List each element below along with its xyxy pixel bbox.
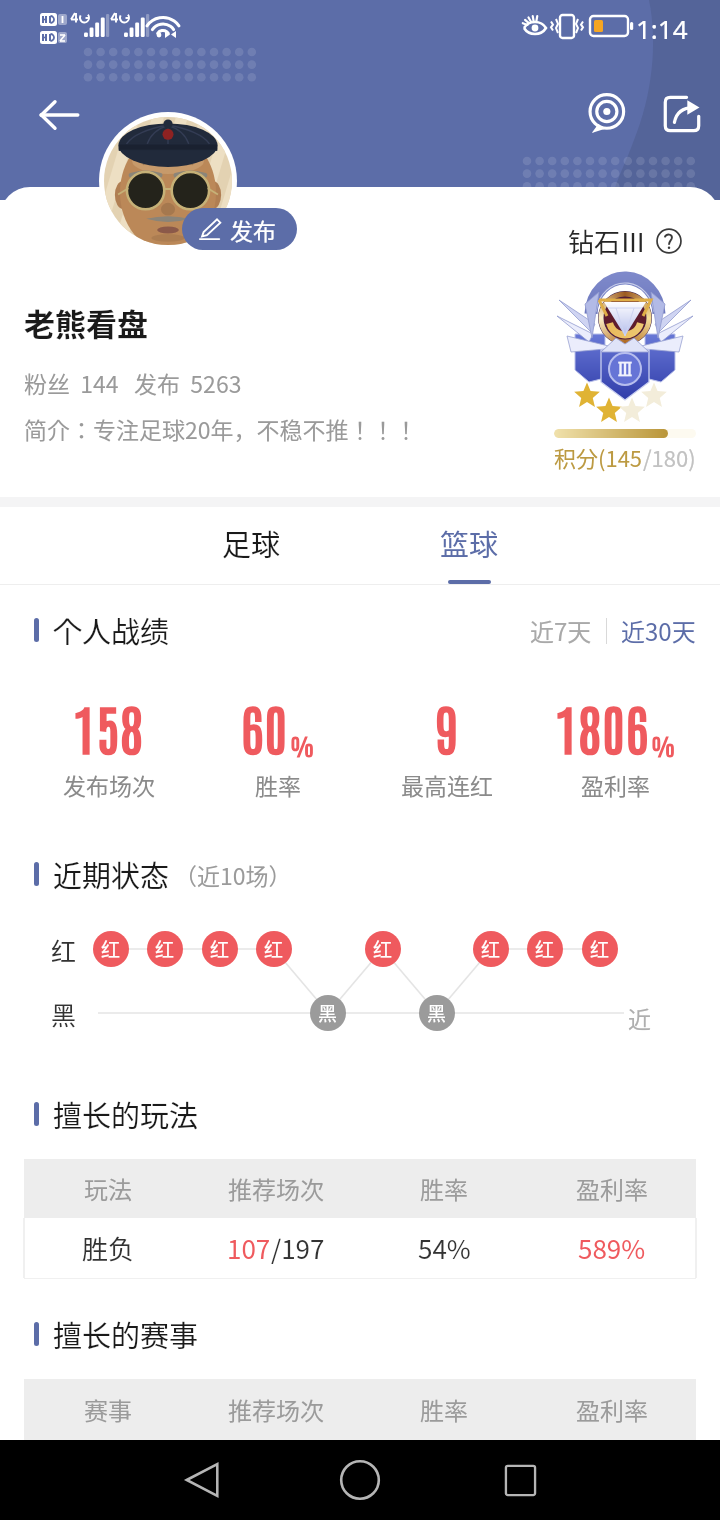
button[interactable]: 近30天 [615, 609, 702, 652]
staticText: 9 [435, 692, 459, 762]
staticText: 胜率 [255, 768, 301, 801]
staticText: 积分(145 [554, 441, 643, 473]
staticText: 近 [628, 1001, 651, 1034]
staticText: 红 [590, 935, 610, 963]
staticText: 1806 [555, 692, 650, 762]
staticText: 红 [535, 935, 555, 963]
staticText: 红 [481, 935, 501, 963]
button[interactable]: Home [320, 1440, 400, 1520]
staticText: 近7天 [530, 613, 592, 648]
staticText: 推荐场次 [228, 1392, 324, 1427]
staticText: % [290, 730, 315, 760]
staticText: /180) [643, 441, 696, 473]
staticText: /197 [271, 1229, 325, 1267]
staticText: 老熊看盘 [24, 300, 148, 345]
staticText: 60 [241, 692, 289, 762]
staticText: 胜率 [420, 1392, 468, 1427]
staticText: 红 [264, 935, 284, 963]
staticText: 简介：专注足球20年，不稳不推！！！ [24, 412, 418, 445]
button[interactable]: Recents [480, 1440, 560, 1520]
staticText: 红 [210, 935, 230, 963]
staticText: 红 [373, 935, 393, 963]
staticText: 个人战绩 [53, 609, 170, 651]
staticText: 589% [578, 1229, 646, 1267]
staticText: 近期状态 [53, 853, 170, 895]
staticText: % [651, 730, 676, 760]
button[interactable]: 发布 [182, 208, 297, 250]
staticText: （近10场） [174, 858, 292, 891]
staticText: 红 [155, 935, 175, 963]
staticText: 擅长的赛事 [53, 1313, 199, 1355]
button[interactable]: 足球 [142, 507, 360, 584]
staticText: 推荐场次 [228, 1171, 324, 1206]
staticText: 粉丝 144 发布 5263 [24, 366, 242, 399]
staticText: 黑 [51, 996, 77, 1032]
button[interactable]: Help [655, 227, 683, 255]
staticText: 篮球 [440, 522, 499, 564]
staticText: 红 [51, 932, 77, 968]
staticText: 盈利率 [576, 1392, 648, 1427]
staticText: 玩法 [84, 1171, 132, 1206]
staticText: 盈利率 [576, 1171, 648, 1206]
staticText: 1:14 [636, 11, 688, 46]
staticText: 盈利率 [581, 768, 650, 801]
staticText: 黑 [427, 999, 447, 1027]
button[interactable]: 篮球 [360, 507, 578, 584]
staticText: 胜率 [420, 1171, 468, 1206]
staticText: 胜负 [82, 1229, 135, 1267]
staticText: 最高连红 [401, 768, 493, 801]
staticText: 钻石Ⅲ [568, 222, 647, 260]
staticText: 107 [227, 1229, 271, 1267]
button[interactable]: Share [652, 84, 712, 144]
staticText: 足球 [222, 522, 281, 564]
staticText: 发布场次 [63, 768, 155, 801]
staticText: 近30天 [621, 613, 696, 648]
staticText: 158 [73, 692, 144, 762]
staticText: 红 [101, 935, 121, 963]
staticText: 发布 [230, 213, 276, 246]
button[interactable]: Back [30, 86, 88, 144]
button[interactable]: Back [162, 1440, 242, 1520]
button[interactable]: 近7天 [524, 609, 598, 652]
button[interactable]: Comment [576, 84, 636, 144]
staticText: 54% [418, 1229, 471, 1267]
staticText: 黑 [318, 999, 338, 1027]
staticText: 擅长的玩法 [53, 1093, 199, 1135]
staticText: 赛事 [84, 1392, 132, 1427]
